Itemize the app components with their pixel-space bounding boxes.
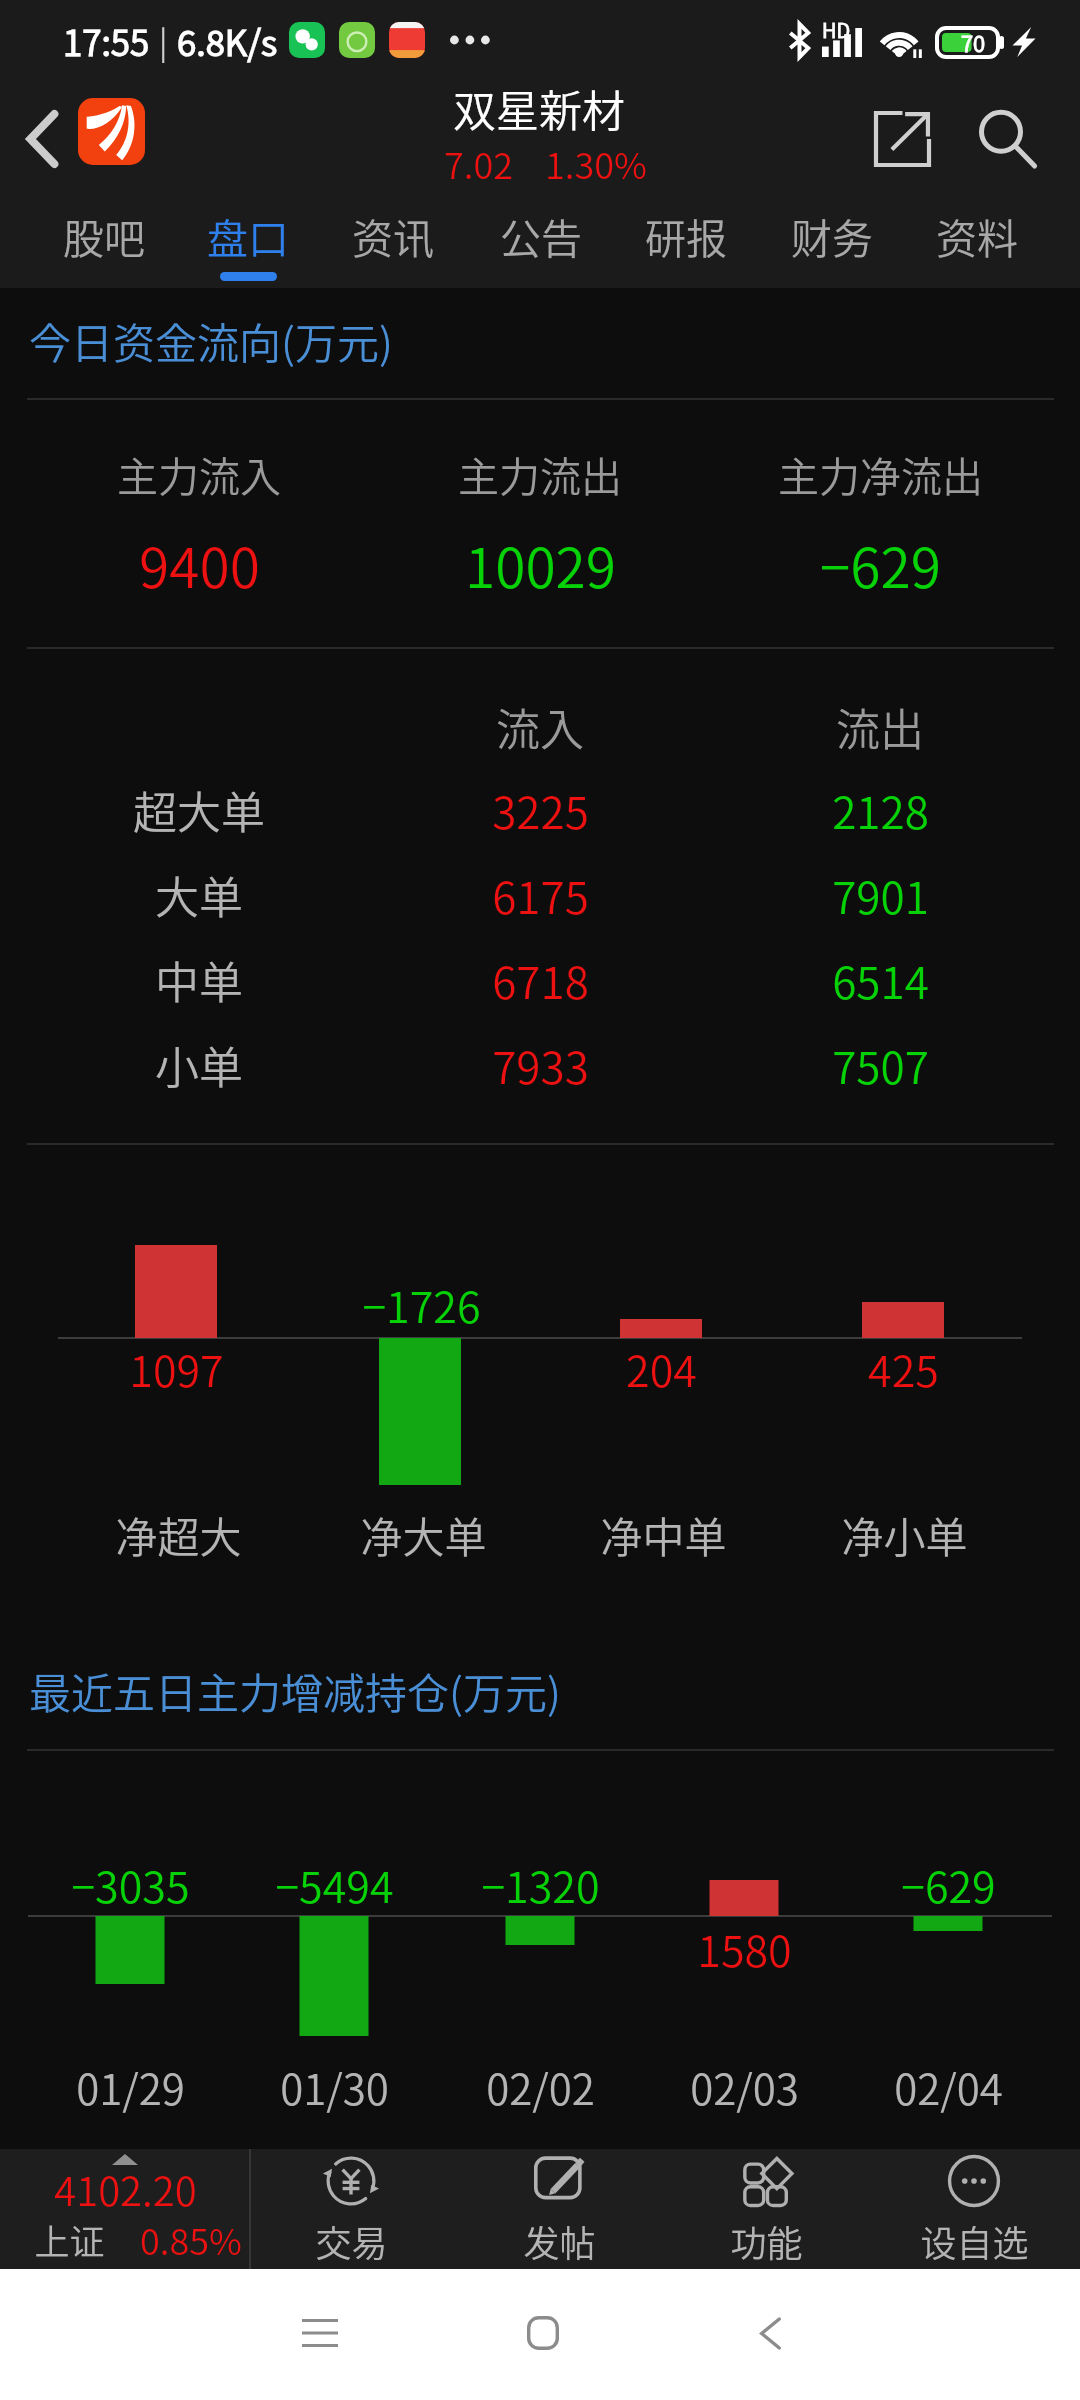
staticText: 研报 bbox=[645, 206, 727, 265]
staticText: 公告 bbox=[500, 206, 582, 265]
staticText: 1580 bbox=[697, 1917, 792, 1979]
button[interactable]: 资料 bbox=[905, 195, 1049, 288]
staticText: 主力净流出 bbox=[778, 444, 983, 503]
button[interactable]: Back bbox=[680, 2268, 860, 2399]
staticText: 资料 bbox=[936, 206, 1018, 265]
staticText: 净中单 bbox=[600, 1504, 727, 1565]
staticText: 双星新材 bbox=[453, 77, 625, 139]
button[interactable] bbox=[874, 2149, 1074, 2269]
staticText: 小单 bbox=[155, 1033, 243, 1097]
staticText: 1097 bbox=[129, 1337, 224, 1399]
staticText: 财务 bbox=[791, 206, 873, 265]
staticText: 4102.20 bbox=[54, 2160, 197, 2218]
button[interactable]: Home bbox=[453, 2267, 633, 2398]
staticText: 425 bbox=[868, 1337, 939, 1399]
button[interactable]: 资讯 bbox=[321, 195, 465, 288]
staticText: 70 bbox=[961, 26, 986, 58]
button[interactable] bbox=[0, 768, 1080, 852]
staticText: 盘口 bbox=[207, 206, 289, 265]
button[interactable] bbox=[0, 853, 1080, 937]
button[interactable]: Eastmoney logo bbox=[78, 98, 145, 165]
staticText: −629 bbox=[820, 524, 941, 604]
button[interactable]: 公告 bbox=[469, 195, 613, 288]
staticText: 主力流入 bbox=[117, 444, 281, 503]
staticText: 净小单 bbox=[841, 1504, 968, 1565]
staticText: 02/04 bbox=[894, 2056, 1003, 2117]
button[interactable]: 研报 bbox=[614, 195, 758, 288]
button[interactable]: 财务 bbox=[760, 195, 904, 288]
staticText: | bbox=[159, 17, 168, 63]
staticText: 6175 bbox=[492, 863, 589, 927]
staticText: 流出 bbox=[836, 695, 924, 759]
staticText: 功能 bbox=[730, 2215, 803, 2267]
button[interactable]: Recents bbox=[230, 2267, 410, 2398]
staticText: 大单 bbox=[155, 863, 243, 927]
staticText: 中单 bbox=[155, 948, 243, 1012]
staticText: 01/30 bbox=[280, 2056, 389, 2117]
staticText: HD bbox=[822, 15, 851, 44]
button[interactable]: Shanghai index bbox=[0, 2149, 249, 2269]
staticText: 17:55 bbox=[63, 15, 150, 66]
staticText: 净超大 bbox=[115, 1504, 242, 1565]
staticText: 净大单 bbox=[360, 1504, 487, 1565]
staticText: −629 bbox=[901, 1853, 996, 1915]
staticText: 6.8K/s bbox=[177, 15, 278, 66]
staticText: 交易 bbox=[315, 2215, 388, 2267]
staticText: 7.02 bbox=[444, 137, 513, 189]
button[interactable] bbox=[0, 938, 1080, 1022]
staticText: 设自选 bbox=[920, 2215, 1029, 2267]
staticText: −5494 bbox=[275, 1853, 394, 1915]
button[interactable] bbox=[251, 2149, 451, 2269]
button[interactable]: 盘口 bbox=[176, 195, 320, 288]
staticText: −1320 bbox=[481, 1853, 600, 1915]
staticText: 发帖 bbox=[523, 2215, 596, 2267]
staticText: 超大单 bbox=[133, 778, 265, 842]
staticText: 9400 bbox=[139, 524, 260, 604]
staticText: 最近五日主力增减持仓(万元) bbox=[29, 1660, 561, 1721]
staticText: 今日资金流向(万元) bbox=[29, 310, 393, 371]
button[interactable]: 股吧 bbox=[32, 195, 176, 288]
button[interactable]: Search bbox=[962, 82, 1052, 195]
button[interactable]: Back bbox=[0, 82, 86, 195]
button[interactable]: Share bbox=[857, 82, 947, 195]
staticText: 0.85% bbox=[140, 2213, 242, 2265]
staticText: 流入 bbox=[496, 695, 584, 759]
button[interactable] bbox=[666, 2149, 866, 2269]
staticText: 204 bbox=[626, 1337, 697, 1399]
staticText: 6514 bbox=[832, 948, 929, 1012]
staticText: 02/03 bbox=[690, 2056, 799, 2117]
button[interactable] bbox=[459, 2149, 659, 2269]
staticText: −1726 bbox=[362, 1273, 481, 1335]
staticText: 3225 bbox=[492, 778, 589, 842]
staticText: 1.30% bbox=[545, 137, 647, 189]
staticText: 02/02 bbox=[486, 2056, 595, 2117]
staticText: 7933 bbox=[492, 1033, 589, 1097]
staticText: 上证 bbox=[34, 2214, 105, 2265]
staticText: 股吧 bbox=[63, 206, 145, 265]
staticText: 01/29 bbox=[76, 2056, 185, 2117]
staticText: 7507 bbox=[832, 1033, 929, 1097]
staticText: 主力流出 bbox=[458, 444, 622, 503]
staticText: −3035 bbox=[71, 1853, 190, 1915]
staticText: 2128 bbox=[832, 778, 929, 842]
staticText: 7901 bbox=[832, 863, 929, 927]
staticText: 6718 bbox=[492, 948, 589, 1012]
staticText: 10029 bbox=[465, 524, 616, 604]
staticText: 资讯 bbox=[352, 206, 434, 265]
button[interactable] bbox=[0, 1023, 1080, 1107]
